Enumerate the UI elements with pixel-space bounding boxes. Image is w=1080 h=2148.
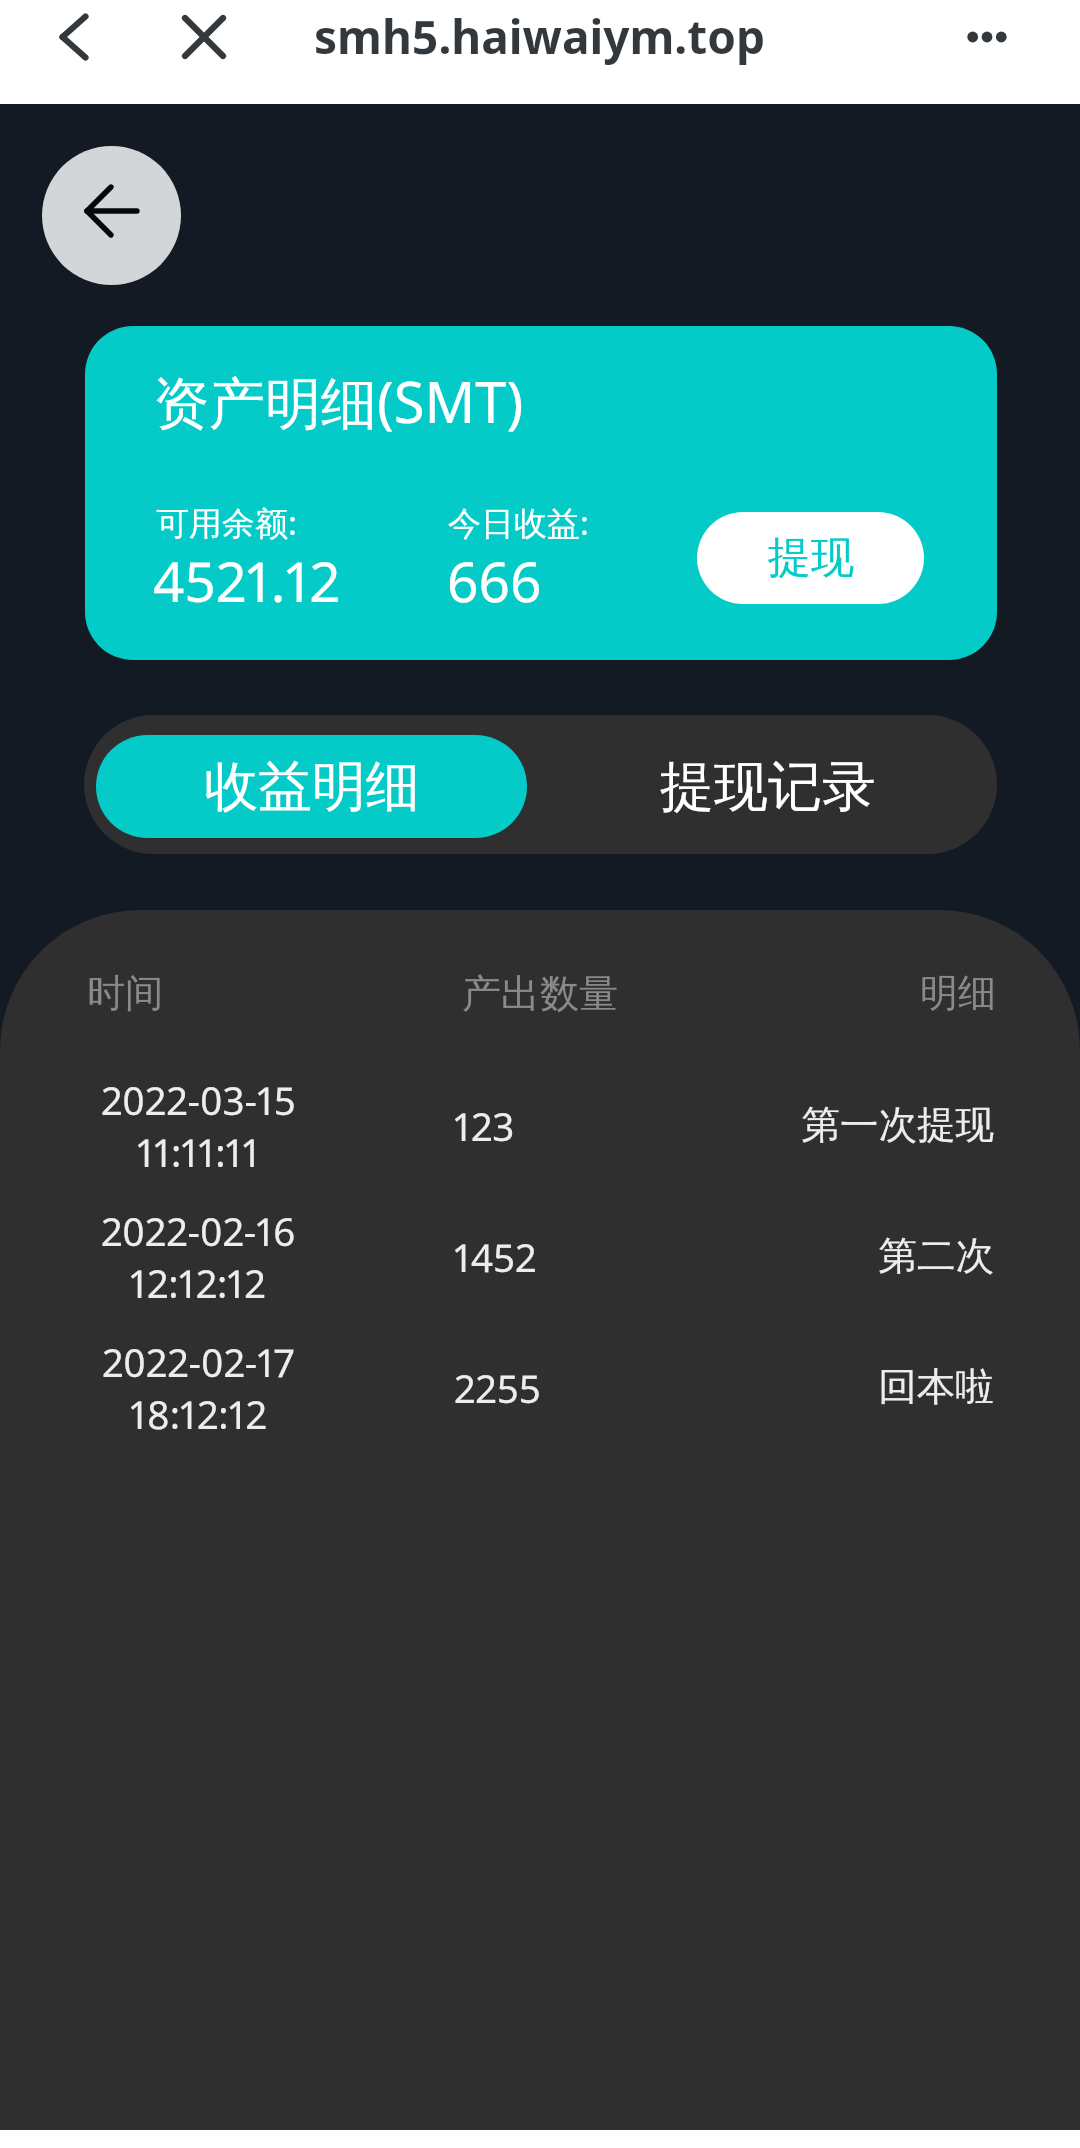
staticText: smh5.haiwaiym.top <box>314 5 766 68</box>
button[interactable]: 2022-03-15 <box>0 1060 1080 1191</box>
staticText: 可用余额: <box>156 500 297 545</box>
button[interactable]: Back <box>40 3 108 71</box>
staticText: 2255 <box>454 1362 814 1414</box>
staticText: 2022-02-16 <box>101 1205 296 1257</box>
staticText: 2022-02-17 <box>102 1336 294 1388</box>
staticText: 收益明细 <box>204 753 420 821</box>
staticText: 12:12:12 <box>130 1257 266 1309</box>
staticText: 今日收益: <box>448 500 589 545</box>
staticText: 第二次 <box>720 1232 994 1281</box>
staticText: 第一次提现 <box>720 1101 994 1150</box>
staticText: 明细 <box>720 969 996 1015</box>
staticText: 时间 <box>87 969 360 1015</box>
staticText: 2022-03-15 <box>101 1074 296 1126</box>
button[interactable]: 提现 <box>697 512 924 604</box>
staticText: 产出数量 <box>360 969 720 1015</box>
staticText: 1452 <box>454 1231 814 1283</box>
button[interactable]: Go back <box>42 146 181 285</box>
staticText: 123 <box>454 1100 814 1152</box>
staticText: 回本啦 <box>720 1363 994 1412</box>
button[interactable]: 2022-02-16 <box>0 1191 1080 1322</box>
button[interactable]: More options <box>951 1 1023 73</box>
button[interactable]: 资产明细(SMT) <box>85 326 997 660</box>
staticText: 18:12:12 <box>130 1388 267 1440</box>
button[interactable]: 2022-02-17 <box>0 1322 1080 1453</box>
button[interactable]: Close <box>170 3 238 71</box>
staticText: 提现记录 <box>660 753 876 821</box>
staticText: 11:11:11 <box>137 1126 260 1178</box>
staticText: 资产明细(SMT) <box>153 363 524 439</box>
button[interactable]: 提现记录 <box>555 735 980 838</box>
staticText: 666 <box>447 543 542 618</box>
staticText: 提现 <box>768 531 854 585</box>
staticText: 4521.12 <box>153 543 341 618</box>
button[interactable]: 收益明细 <box>96 735 527 838</box>
